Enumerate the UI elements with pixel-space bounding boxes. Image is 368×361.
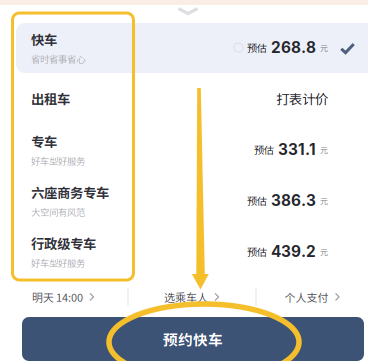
button[interactable]: 六座商务专车 <box>0 175 368 226</box>
button[interactable]: 行政级专车 <box>0 226 368 277</box>
staticText: 明天 14:00 <box>32 289 83 305</box>
staticText: 元 <box>320 246 328 257</box>
staticText: 好车型好服务 <box>31 154 85 167</box>
staticText: 行政级专车 <box>31 234 96 253</box>
button[interactable]: 预约快车 <box>22 317 364 361</box>
staticText: 元 <box>320 144 328 155</box>
staticText: 268.8 <box>271 38 316 57</box>
staticText: 预估 <box>247 40 267 55</box>
staticText: 省时省事省心 <box>31 52 85 65</box>
staticText: 快车 <box>31 30 57 49</box>
staticText: 预估 <box>247 244 267 259</box>
staticText: 打表计价 <box>276 89 328 108</box>
button[interactable]: 快车 <box>0 22 368 73</box>
staticText: 出租车 <box>31 89 70 108</box>
staticText: 好车型好服务 <box>31 256 85 269</box>
staticText: 预估 <box>247 193 267 208</box>
staticText: 331.1 <box>278 140 316 159</box>
button[interactable]: 专车 <box>0 124 368 175</box>
staticText: 元 <box>320 195 328 206</box>
staticText: 439.2 <box>271 242 316 261</box>
staticText: 元 <box>320 42 328 53</box>
button[interactable]: 个人支付 <box>256 282 368 312</box>
button[interactable]: 选乘车人 <box>128 282 255 312</box>
staticText: 个人支付 <box>284 289 328 305</box>
staticText: 大空间有风范 <box>31 205 85 218</box>
staticText: 预估 <box>254 142 274 157</box>
staticText: 六座商务专车 <box>31 183 109 202</box>
staticText: 专车 <box>31 132 57 151</box>
staticText: 选乘车人 <box>164 289 208 305</box>
staticText: 预约快车 <box>163 328 223 350</box>
staticText: 386.3 <box>271 191 316 210</box>
button[interactable]: 出租车 <box>0 73 368 124</box>
button[interactable]: 明天 14:00 <box>0 282 127 312</box>
